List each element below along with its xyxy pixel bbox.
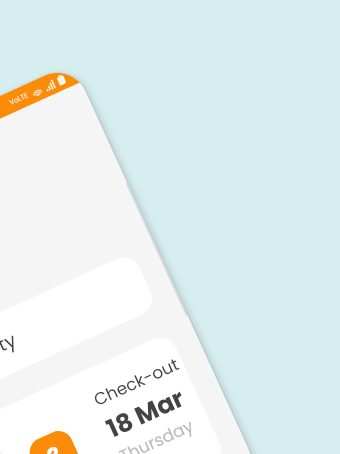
staticText: Check-out [90, 352, 183, 412]
staticText: 3 [42, 439, 68, 454]
button[interactable]: Nights [25, 426, 84, 454]
staticText: City [0, 327, 21, 366]
staticText: 18 Mar [101, 380, 190, 446]
button[interactable]: Nights [0, 332, 227, 454]
button[interactable]: City [0, 252, 158, 391]
staticText: VoLTE [8, 90, 30, 108]
staticText: Thursday [116, 414, 197, 454]
